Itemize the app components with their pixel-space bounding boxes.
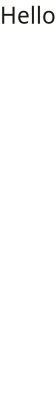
staticText: Hello bbox=[0, 0, 56, 30]
